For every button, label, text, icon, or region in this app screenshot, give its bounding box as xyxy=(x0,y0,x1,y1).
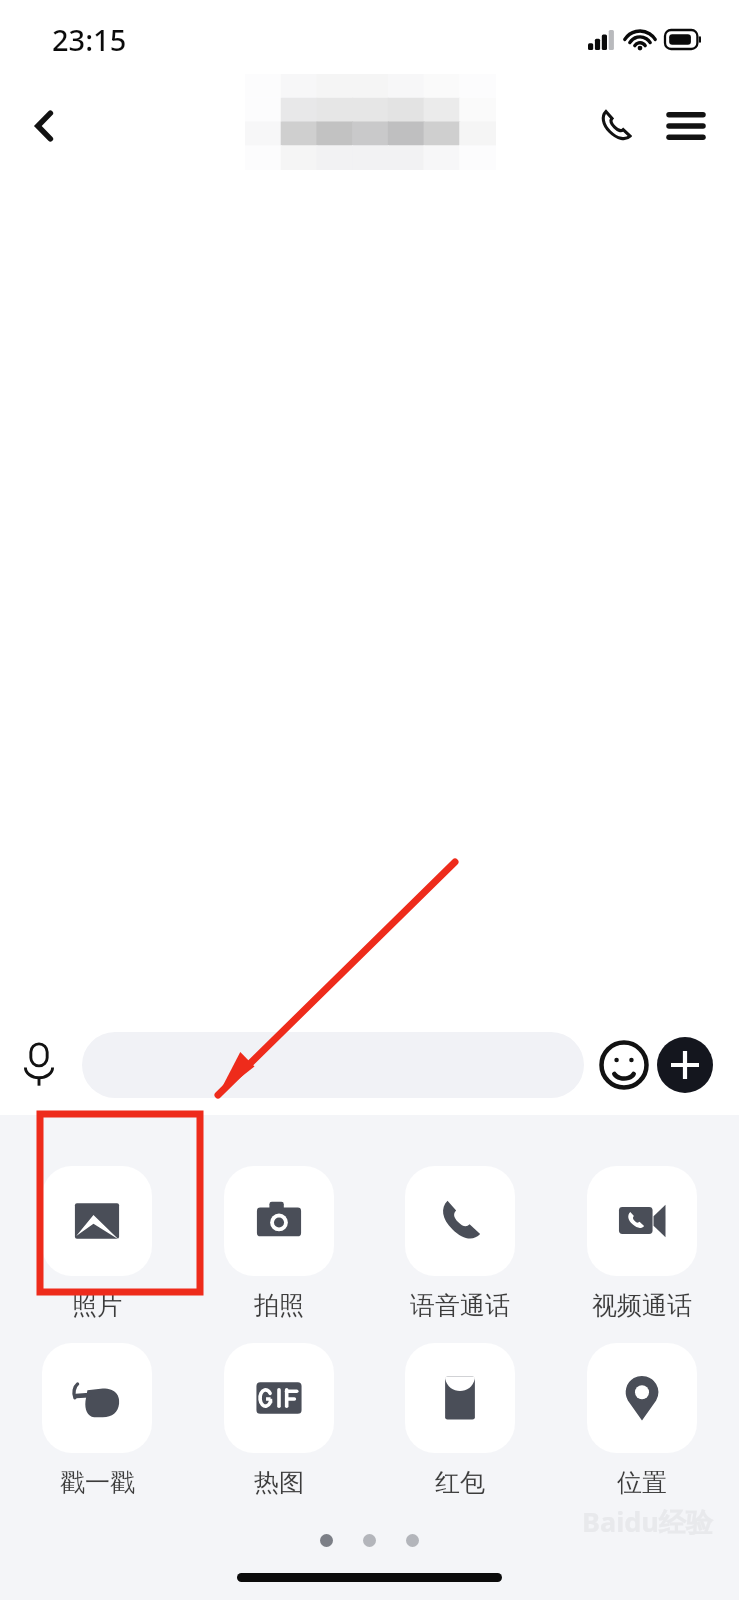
button[interactable]: 视频通话 xyxy=(587,1166,697,1321)
staticText: 红包 xyxy=(435,1467,485,1498)
button[interactable]: 热图 xyxy=(224,1343,334,1498)
button[interactable]: 戳一戳 xyxy=(42,1343,152,1498)
staticText: 热图 xyxy=(254,1467,304,1498)
button[interactable] xyxy=(82,1032,584,1098)
staticText: 照片 xyxy=(72,1290,122,1321)
button[interactable]: Call xyxy=(585,95,647,157)
staticText: 语音通话 xyxy=(410,1290,510,1321)
button[interactable]: 拍照 xyxy=(224,1166,334,1321)
staticText: 23:15 xyxy=(52,20,127,59)
button[interactable]: Voice xyxy=(10,1036,68,1094)
button[interactable]: Emoji xyxy=(597,1038,651,1092)
button[interactable]: 红包 xyxy=(405,1343,515,1498)
staticText: Baidu经验 xyxy=(582,1503,713,1540)
staticText: 拍照 xyxy=(254,1290,304,1321)
button[interactable]: Back xyxy=(16,97,74,155)
staticText: 视频通话 xyxy=(592,1290,692,1321)
button[interactable]: Menu xyxy=(655,95,717,157)
staticText: 戳一戳 xyxy=(60,1467,135,1498)
button[interactable]: 照片 xyxy=(42,1166,152,1321)
button[interactable]: 语音通话 xyxy=(405,1166,515,1321)
button[interactable]: More xyxy=(657,1037,713,1093)
button[interactable]: 位置 xyxy=(587,1343,697,1498)
staticText: 位置 xyxy=(617,1467,667,1498)
